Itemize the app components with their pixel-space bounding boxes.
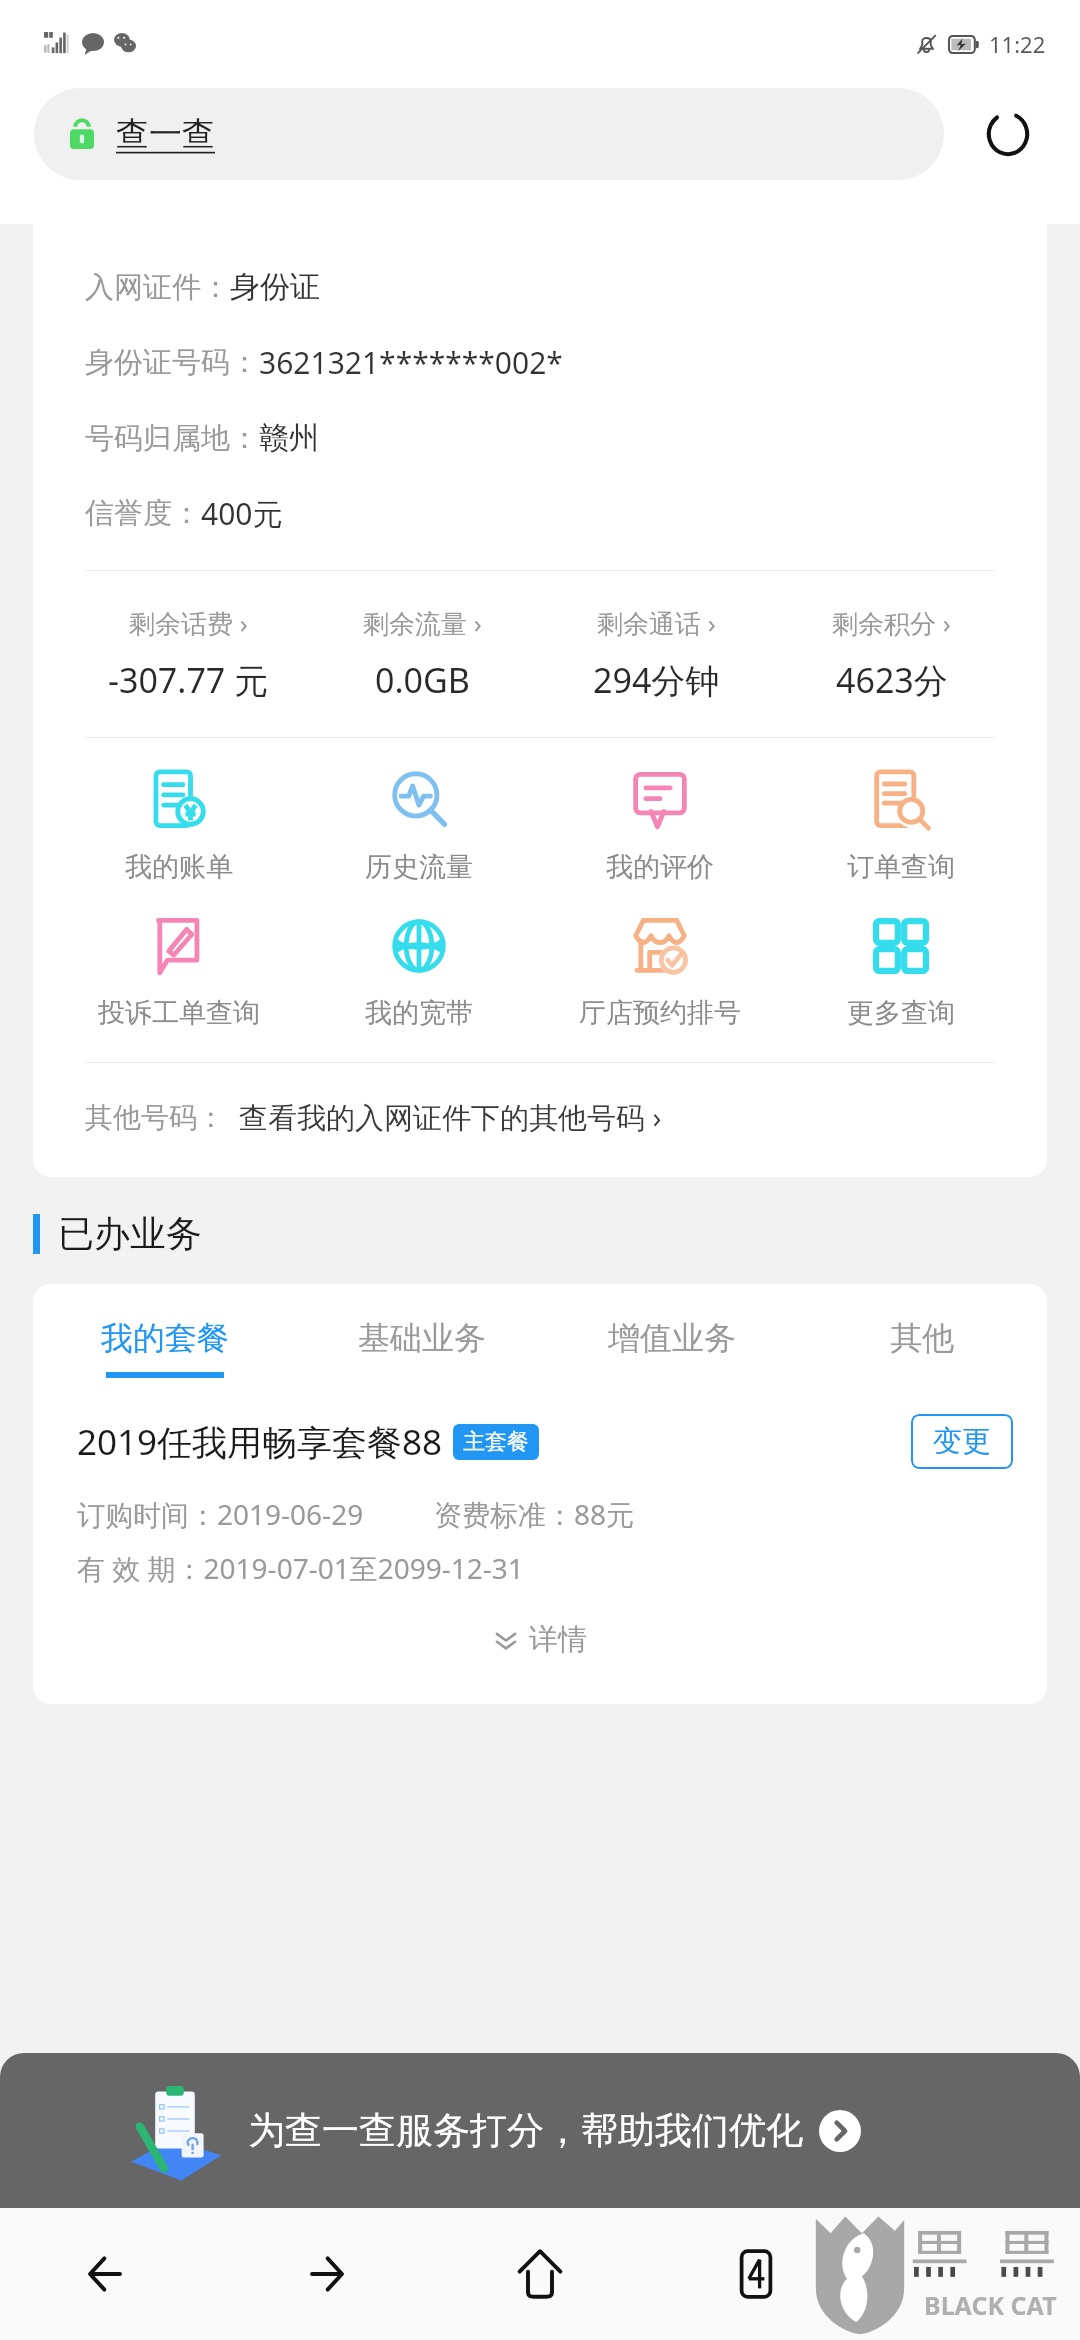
button[interactable]: 投诉工单查询 — [59, 910, 299, 1034]
button[interactable]: 剩余积分 › — [774, 605, 1009, 703]
staticText: 变更 — [933, 1423, 991, 1460]
button[interactable]: 其他 — [797, 1318, 1047, 1378]
button[interactable]: Back — [0, 2208, 216, 2340]
staticText: 其他 — [890, 1318, 954, 1358]
button[interactable]: 订单查询 — [780, 764, 1021, 888]
button[interactable]: 为查一查服务打分，帮助我们优化 — [0, 2053, 1080, 2208]
button[interactable]: Tabs — [648, 2208, 864, 2340]
button[interactable]: 我的账单 — [59, 764, 299, 888]
staticText: 身份证 — [230, 268, 320, 306]
button[interactable]: 剩余流量 › — [305, 605, 539, 703]
staticText: 400元 — [201, 493, 283, 534]
staticText: 剩余积分 › — [832, 605, 951, 641]
staticText: 信誉度： — [85, 495, 201, 532]
button[interactable]: 增值业务 — [547, 1318, 797, 1378]
button[interactable]: 基础业务 — [297, 1318, 547, 1378]
staticText: 剩余话费 › — [129, 605, 248, 641]
button[interactable]: 更多查询 — [780, 910, 1021, 1034]
staticText: 号码归属地： — [85, 420, 259, 457]
staticText: 入网证件： — [85, 269, 230, 306]
button[interactable]: 我的评价 — [539, 764, 780, 888]
staticText: 0.0GB — [375, 657, 470, 703]
button[interactable]: 我的套餐 — [33, 1318, 297, 1378]
staticText: 其他号码： — [85, 1100, 225, 1135]
staticText: 资费标准：88元 — [434, 1495, 635, 1533]
staticText: 4623分 — [836, 657, 948, 703]
staticText: 更多查询 — [847, 996, 955, 1030]
button[interactable]: 详情 — [33, 1609, 1047, 1670]
staticText: 2019任我用畅享套餐88 — [77, 1418, 443, 1466]
staticText: 我的账单 — [125, 850, 233, 884]
staticText: 剩余流量 › — [363, 605, 482, 641]
staticText: 订购时间：2019-06-29 — [77, 1495, 364, 1533]
staticText: 基础业务 — [358, 1318, 486, 1358]
staticText: 增值业务 — [608, 1318, 736, 1358]
button[interactable]: Forward — [216, 2208, 432, 2340]
button[interactable]: Home — [432, 2208, 648, 2340]
staticText: 294分钟 — [593, 657, 720, 703]
staticText: 3621321*******002* — [259, 342, 563, 383]
staticText: 主套餐 — [463, 1428, 529, 1456]
button[interactable]: 其他号码： — [33, 1063, 1047, 1177]
staticText: 厅店预约排号 — [579, 996, 741, 1030]
staticText: 剩余通话 › — [597, 605, 716, 641]
staticText: BLACK CAT — [924, 2288, 1057, 2322]
staticText: 有 效 期：2019-07-01至2099-12-31 — [77, 1549, 524, 1587]
staticText: 为查一查服务打分，帮助我们优化 — [248, 2107, 803, 2154]
staticText: 查一查 — [116, 113, 215, 155]
staticText: 我的套餐 — [101, 1318, 229, 1358]
staticText: 我的宽带 — [365, 996, 473, 1030]
staticText: 身份证号码： — [85, 344, 259, 381]
button[interactable]: 厅店预约排号 — [539, 910, 780, 1034]
button[interactable]: 剩余通话 › — [539, 605, 774, 703]
button[interactable]: 查一查 — [34, 88, 944, 180]
button[interactable]: 变更 — [911, 1414, 1013, 1469]
button[interactable]: 历史流量 — [299, 764, 539, 888]
staticText: 订单查询 — [847, 850, 955, 884]
button[interactable]: 剩余话费 › — [71, 605, 305, 703]
staticText: 11:22 — [989, 29, 1046, 59]
staticText: 投诉工单查询 — [98, 996, 260, 1030]
staticText: 历史流量 — [365, 850, 473, 884]
button[interactable]: 我的宽带 — [299, 910, 539, 1034]
staticText: 已办业务 — [58, 1211, 202, 1256]
staticText: 查看我的入网证件下的其他号码 › — [239, 1097, 662, 1137]
button[interactable]: Refresh — [970, 96, 1046, 172]
staticText: 详情 — [529, 1621, 587, 1658]
staticText: 我的评价 — [606, 850, 714, 884]
staticText: 赣州 — [259, 419, 319, 457]
staticText: -307.77 元 — [108, 657, 269, 703]
